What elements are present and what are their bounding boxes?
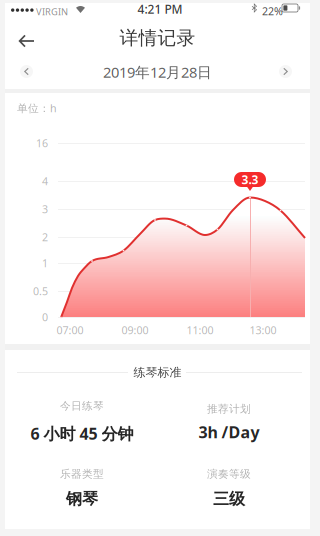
staticText: 4: [42, 174, 48, 188]
button[interactable]: Next day: [272, 58, 299, 85]
staticText: 4:21 PM: [137, 1, 182, 17]
staticText: 22%: [262, 4, 283, 18]
staticText: 2: [42, 230, 48, 244]
staticText: 2019年12月28日: [103, 62, 212, 82]
staticText: 练琴标准: [133, 365, 181, 380]
staticText: 钢琴: [66, 489, 98, 509]
staticText: 推荐计划: [207, 402, 251, 415]
staticText: 6 小时 45 分钟: [30, 423, 133, 444]
staticText: 3.3: [241, 171, 258, 187]
staticText: 3h /Day: [198, 421, 259, 443]
staticText: 16: [36, 136, 48, 150]
staticText: 乐器类型: [60, 467, 104, 480]
staticText: 13:00: [249, 323, 276, 337]
staticText: 今日练琴: [60, 399, 104, 412]
staticText: VIRGIN: [36, 5, 68, 18]
staticText: 11:00: [186, 323, 213, 337]
staticText: 单位：h: [17, 101, 57, 115]
button[interactable]: Back: [9, 25, 44, 57]
staticText: 演奏等级: [207, 467, 251, 480]
staticText: 3: [42, 202, 48, 216]
button[interactable]: Previous day: [13, 58, 40, 85]
staticText: 详情记录: [119, 26, 195, 49]
staticText: 三级: [213, 489, 245, 509]
staticText: 0.5: [33, 284, 48, 298]
staticText: 0: [42, 310, 48, 324]
staticText: 09:00: [121, 323, 148, 337]
staticText: 1: [42, 256, 48, 270]
staticText: 07:00: [56, 323, 83, 337]
